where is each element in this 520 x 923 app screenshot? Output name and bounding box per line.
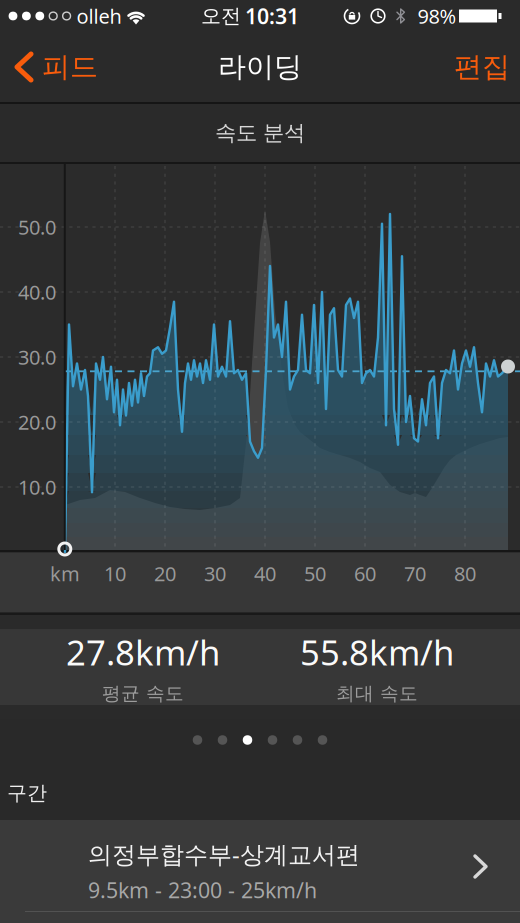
staticText: 피드 — [42, 50, 98, 84]
staticText: 55.8km/h — [300, 629, 454, 675]
staticText: 10 — [104, 560, 126, 587]
button[interactable]: 피드 — [0, 50, 98, 84]
staticText: 40.0 — [18, 279, 56, 305]
staticText: 구간 — [7, 781, 47, 805]
staticText: 30 — [204, 560, 226, 587]
staticText: 평균 속도 — [102, 682, 184, 705]
staticText: olleh — [76, 3, 121, 29]
staticText: 10.0 — [18, 474, 56, 500]
button[interactable]: 편집 — [454, 50, 520, 84]
staticText: 9.5km - 23:00 - 25km/h — [88, 876, 317, 904]
staticText: 의정부합수부-상계교서편 — [88, 838, 360, 870]
staticText: km — [50, 560, 80, 587]
staticText: 속도 분석 — [215, 120, 305, 146]
button[interactable]: 페이지 선택 — [193, 735, 327, 745]
staticText: 30.0 — [18, 344, 56, 370]
staticText: 98% — [417, 3, 456, 29]
staticText: 50.0 — [18, 214, 56, 240]
staticText: 20.0 — [18, 409, 56, 435]
staticText: 40 — [254, 560, 276, 587]
staticText: 50 — [304, 560, 326, 587]
staticText: 10:31 — [245, 2, 299, 30]
staticText: 27.8km/h — [66, 629, 220, 675]
staticText: 오전 — [201, 4, 241, 28]
staticText: 최대 속도 — [336, 682, 418, 705]
staticText: 60 — [354, 560, 376, 587]
staticText: 라이딩 — [218, 50, 302, 84]
staticText: 20 — [154, 560, 176, 587]
staticText: 70 — [404, 560, 426, 587]
staticText: 80 — [454, 560, 476, 587]
button[interactable]: 의정부합수부-상계교서편 — [0, 820, 520, 923]
staticText: 편집 — [454, 50, 510, 84]
